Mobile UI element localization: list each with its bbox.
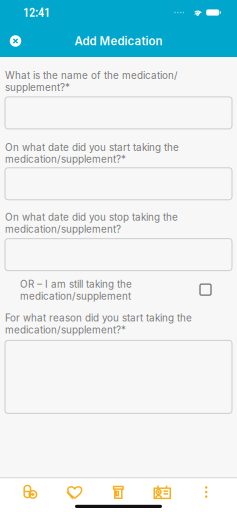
staticText: Add Medication xyxy=(74,34,162,48)
staticText: What is the name of the medication/ supp… xyxy=(5,69,178,93)
button[interactable]: More xyxy=(184,481,228,503)
button[interactable]: Close xyxy=(0,25,30,57)
button[interactable]: OR – I am still taking the medication/su… xyxy=(5,278,200,302)
staticText: 12:41 xyxy=(23,5,50,20)
staticText: OR – I am still taking the medication/su… xyxy=(20,278,132,302)
staticText: On what date did you start taking the me… xyxy=(5,141,179,165)
button[interactable]: Records xyxy=(140,481,184,503)
button[interactable]: Health xyxy=(52,481,96,503)
button[interactable]: I am still taking this medication xyxy=(200,278,232,295)
button[interactable]: Prescriptions xyxy=(96,481,140,503)
staticText: On what date did you stop taking the med… xyxy=(5,211,178,235)
staticText: For what reason did you start taking the… xyxy=(5,312,192,336)
button[interactable]: Medications xyxy=(8,481,52,503)
